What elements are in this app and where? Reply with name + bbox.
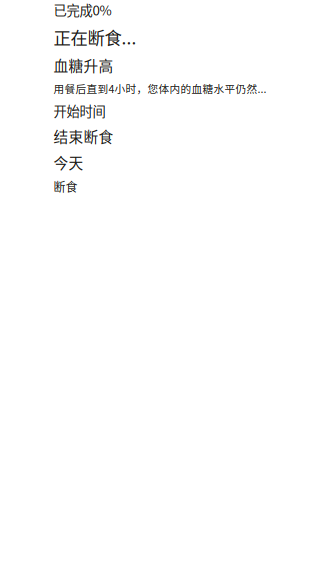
staticText: 正在断食... [53,24,136,49]
staticText: 开始时间 [53,101,105,120]
staticText: 用餐后直到4小时，您体内的血糖水平仍然... [53,81,266,96]
staticText: 血糖升高 [53,54,113,76]
staticText: 结束断食 [53,125,113,147]
staticText: 断食 [53,178,77,195]
staticText: 今天 [53,152,83,173]
staticText: 已完成0% [53,0,111,19]
